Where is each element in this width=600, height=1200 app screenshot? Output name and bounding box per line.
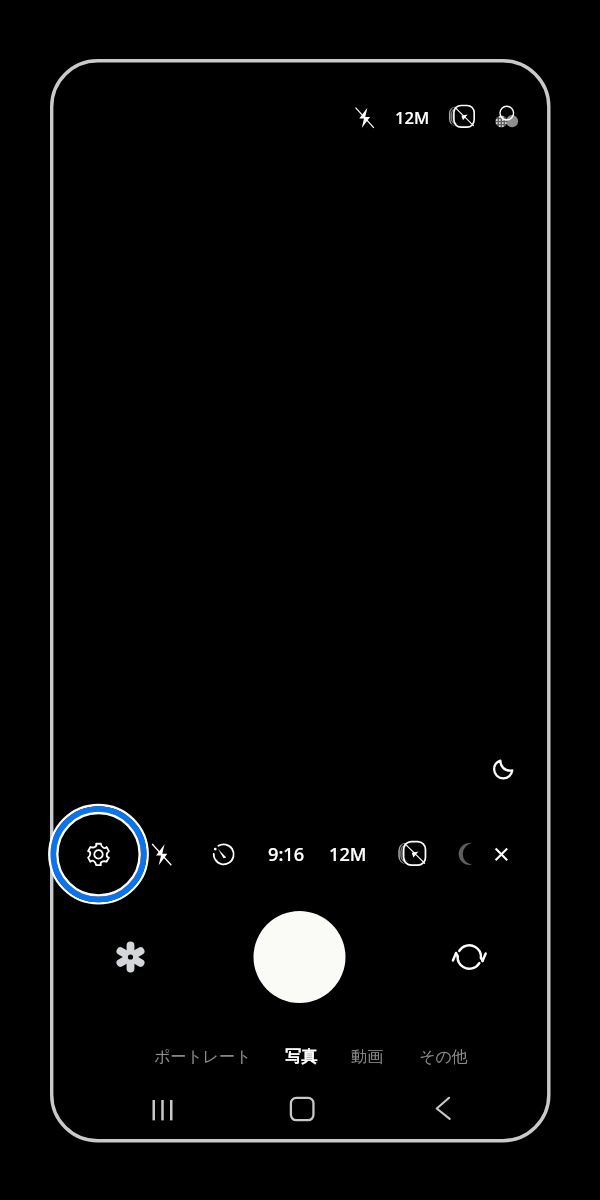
staticText: その他 (419, 1047, 468, 1067)
button[interactable]: その他 (407, 1036, 479, 1078)
button[interactable]: Home (272, 1085, 332, 1133)
button[interactable]: Flash off (342, 96, 386, 140)
button[interactable]: Motion photo off (438, 96, 482, 140)
button[interactable]: Timer (201, 831, 247, 877)
button[interactable]: 写真 (273, 1036, 329, 1078)
button[interactable]: Settings (70, 825, 128, 883)
staticText: 12M (395, 106, 430, 129)
button[interactable]: 9:16 (259, 831, 313, 877)
button[interactable]: 動画 (339, 1036, 395, 1078)
button[interactable]: Back (413, 1085, 473, 1133)
button[interactable]: 12M (321, 831, 375, 877)
staticText: 写真 (285, 1047, 317, 1067)
button[interactable]: Filters and effects (485, 96, 529, 140)
staticText: ポートレート (154, 1047, 252, 1067)
button[interactable]: Recent apps (133, 1085, 193, 1133)
button[interactable]: Flash (138, 831, 184, 877)
staticText: 動画 (351, 1047, 383, 1067)
button[interactable]: ポートレート (148, 1036, 258, 1078)
button[interactable]: Close (479, 832, 523, 876)
button[interactable]: Switch camera (441, 929, 497, 985)
button[interactable]: 12M (389, 95, 435, 139)
button[interactable]: Motion photo (387, 832, 433, 878)
staticText: 12M (329, 842, 367, 867)
button[interactable]: Take picture (254, 911, 346, 1003)
button[interactable]: Gallery (103, 929, 159, 985)
staticText: 9:16 (268, 842, 305, 867)
button[interactable]: Night mode (482, 747, 526, 791)
